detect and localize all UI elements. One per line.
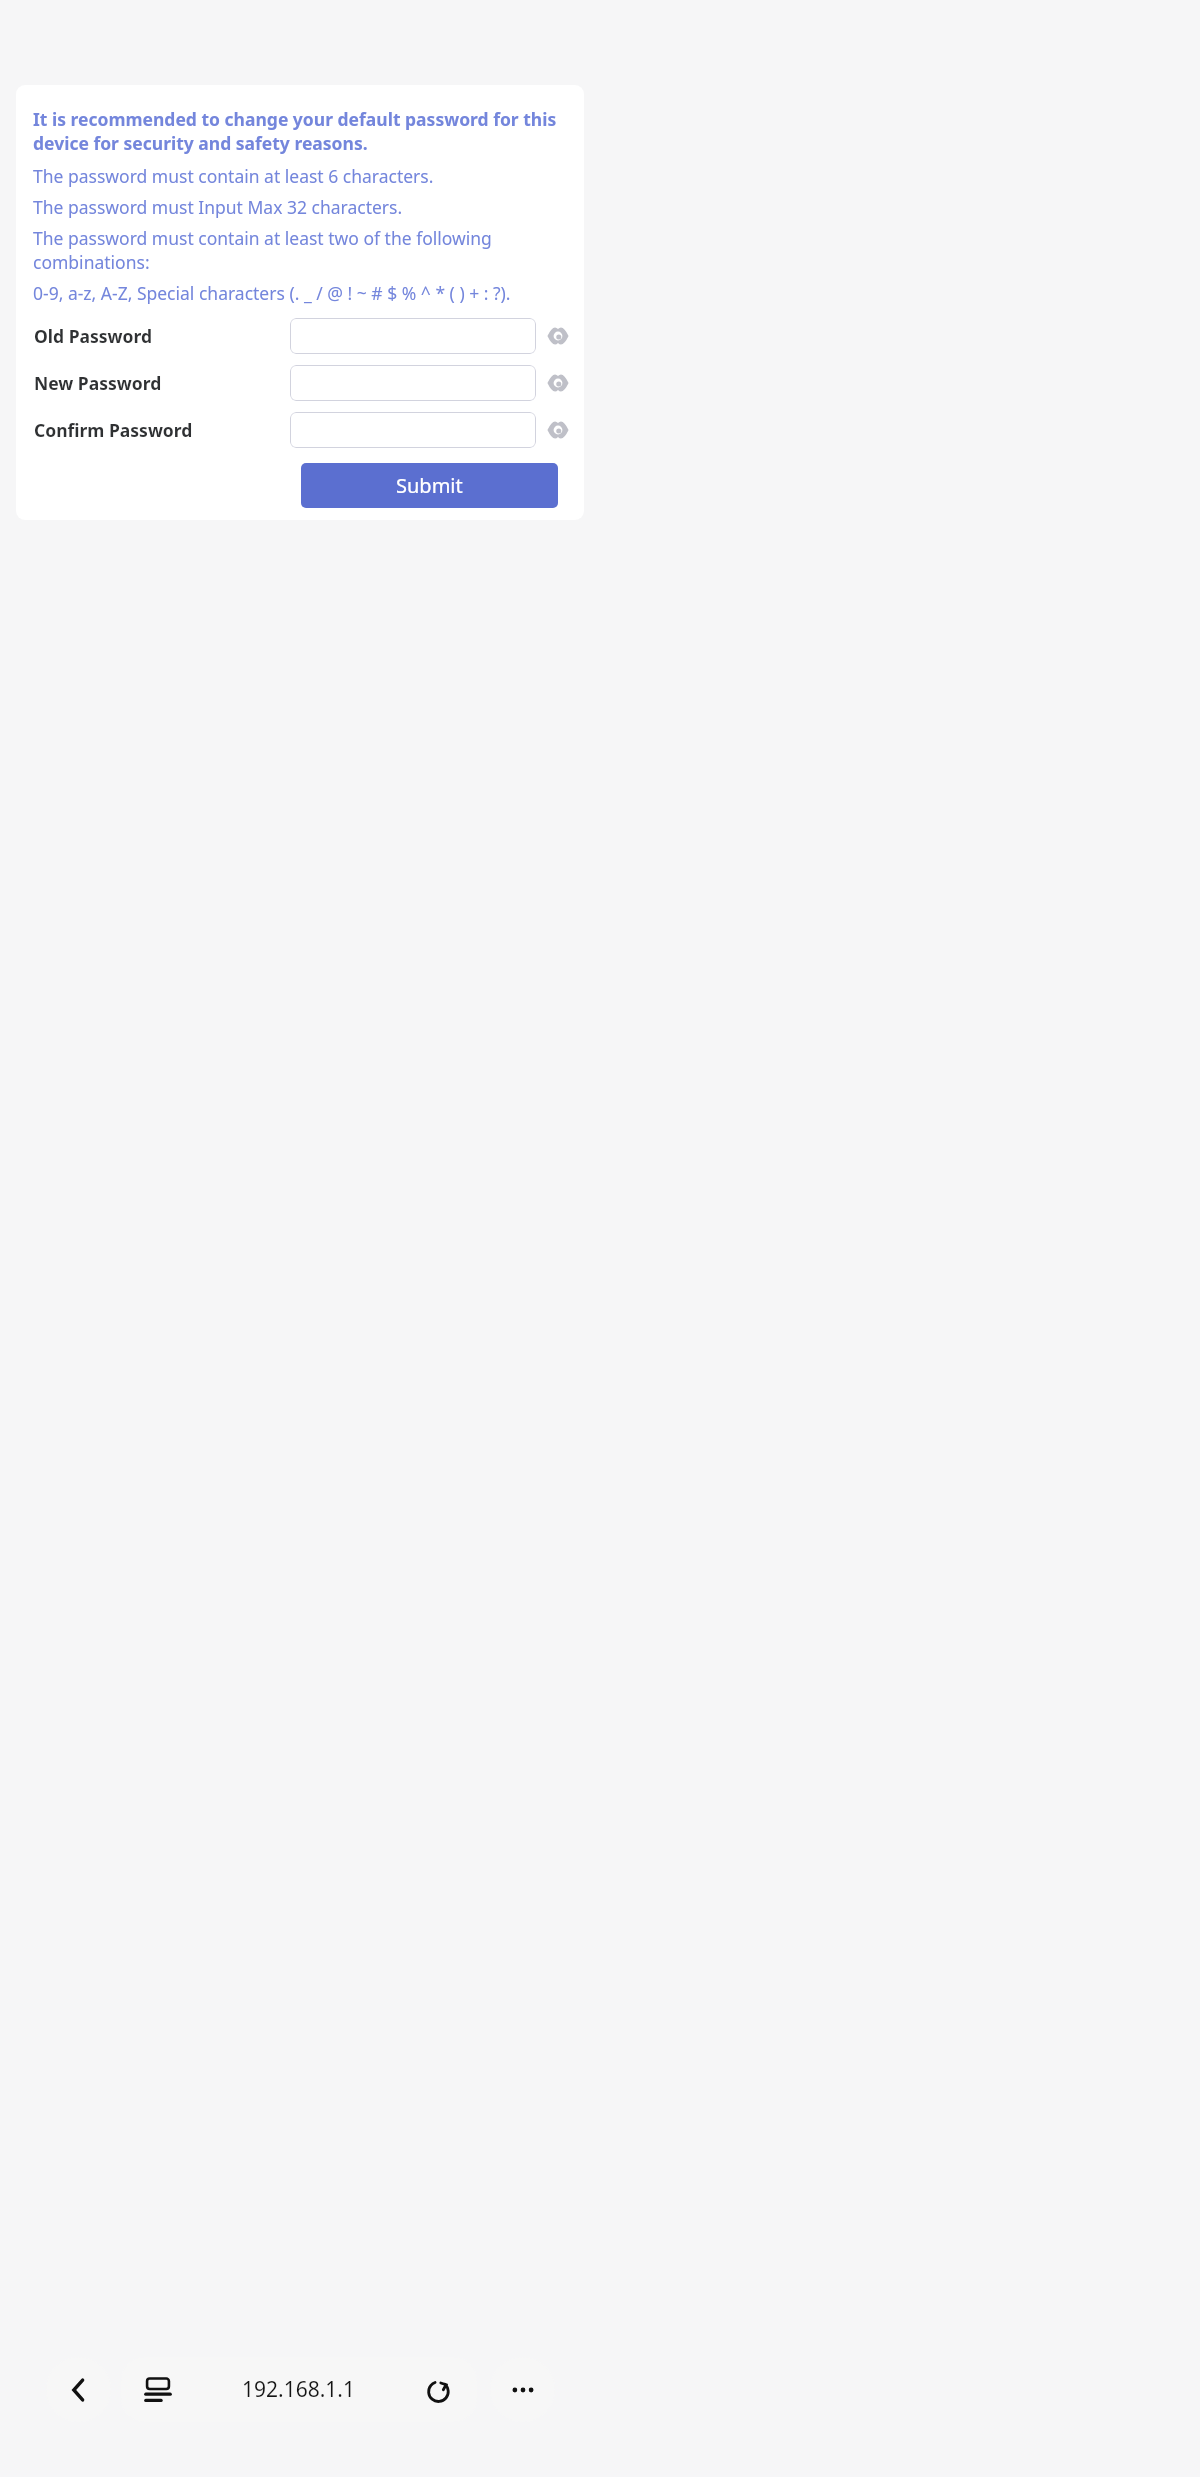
button[interactable]: Show password [544, 369, 572, 397]
button[interactable]: Reader view [121, 2357, 477, 2422]
button[interactable]: Back [46, 2357, 111, 2422]
staticText: The password must contain at least 6 cha… [33, 164, 568, 188]
button[interactable]: Submit [301, 463, 558, 508]
staticText: Confirm Password [34, 418, 193, 442]
staticText: Submit [396, 472, 463, 499]
button[interactable]: Show password [544, 416, 572, 444]
staticText: The password must Input Max 32 character… [33, 195, 568, 219]
button[interactable]: More options [490, 2357, 555, 2422]
button[interactable]: Reader view [143, 2375, 173, 2405]
button[interactable] [290, 412, 536, 448]
staticText: New Password [34, 371, 162, 395]
button[interactable] [290, 365, 536, 401]
staticText: Old Password [34, 324, 153, 348]
staticText: 0-9, a-z, A-Z, Special characters (. _ /… [33, 281, 576, 305]
button[interactable]: Reload [423, 2374, 455, 2406]
button[interactable]: Show password [544, 322, 572, 350]
staticText: 192.168.1.1 [242, 2375, 355, 2404]
staticText: The password must contain at least two o… [33, 226, 558, 274]
staticText: It is recommended to change your default… [33, 107, 562, 155]
button[interactable] [290, 318, 536, 354]
